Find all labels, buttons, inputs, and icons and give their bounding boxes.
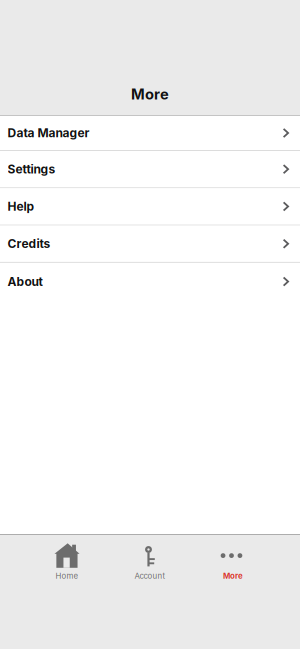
button[interactable]: Help [0, 188, 300, 226]
button[interactable]: Credits [0, 226, 300, 263]
button[interactable]: Home [25, 545, 108, 586]
button[interactable]: About [0, 263, 300, 300]
staticText: More [131, 85, 169, 103]
button[interactable]: Account [108, 545, 191, 586]
staticText: Help [7, 199, 34, 214]
staticText: Settings [7, 162, 55, 176]
staticText: Account [134, 571, 165, 581]
staticText: Data Manager [7, 126, 89, 140]
staticText: About [7, 274, 42, 289]
button[interactable]: Data Manager [0, 116, 300, 151]
staticText: Home [55, 571, 78, 581]
button[interactable]: Settings [0, 151, 300, 188]
staticText: Credits [7, 236, 50, 251]
button[interactable]: More [191, 545, 274, 586]
staticText: More [223, 571, 243, 581]
